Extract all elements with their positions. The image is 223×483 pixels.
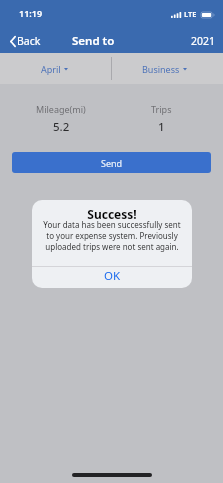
- button[interactable]: 2021: [191, 34, 223, 48]
- button[interactable]: April: [0, 53, 111, 84]
- staticText: Mileage(mi): [36, 103, 86, 115]
- staticText: Trips: [151, 103, 172, 115]
- staticText: Back: [17, 34, 41, 48]
- staticText: Business: [142, 63, 180, 75]
- staticText: Send: [101, 157, 123, 169]
- staticText: 5.2: [53, 119, 70, 135]
- button[interactable]: Send: [12, 152, 211, 173]
- staticText: LTE: [184, 9, 197, 19]
- button[interactable]: Business: [111, 53, 223, 84]
- staticText: OK: [104, 268, 121, 284]
- button[interactable]: Back: [0, 34, 47, 48]
- button[interactable]: OK: [32, 267, 192, 288]
- staticText: April: [41, 63, 61, 75]
- staticText: Send to: [72, 33, 115, 49]
- staticText: 1: [158, 119, 165, 135]
- staticText: 11:19: [19, 7, 43, 19]
- staticText: Your data has been successfully sent to …: [32, 219, 192, 252]
- staticText: Success!: [32, 206, 192, 222]
